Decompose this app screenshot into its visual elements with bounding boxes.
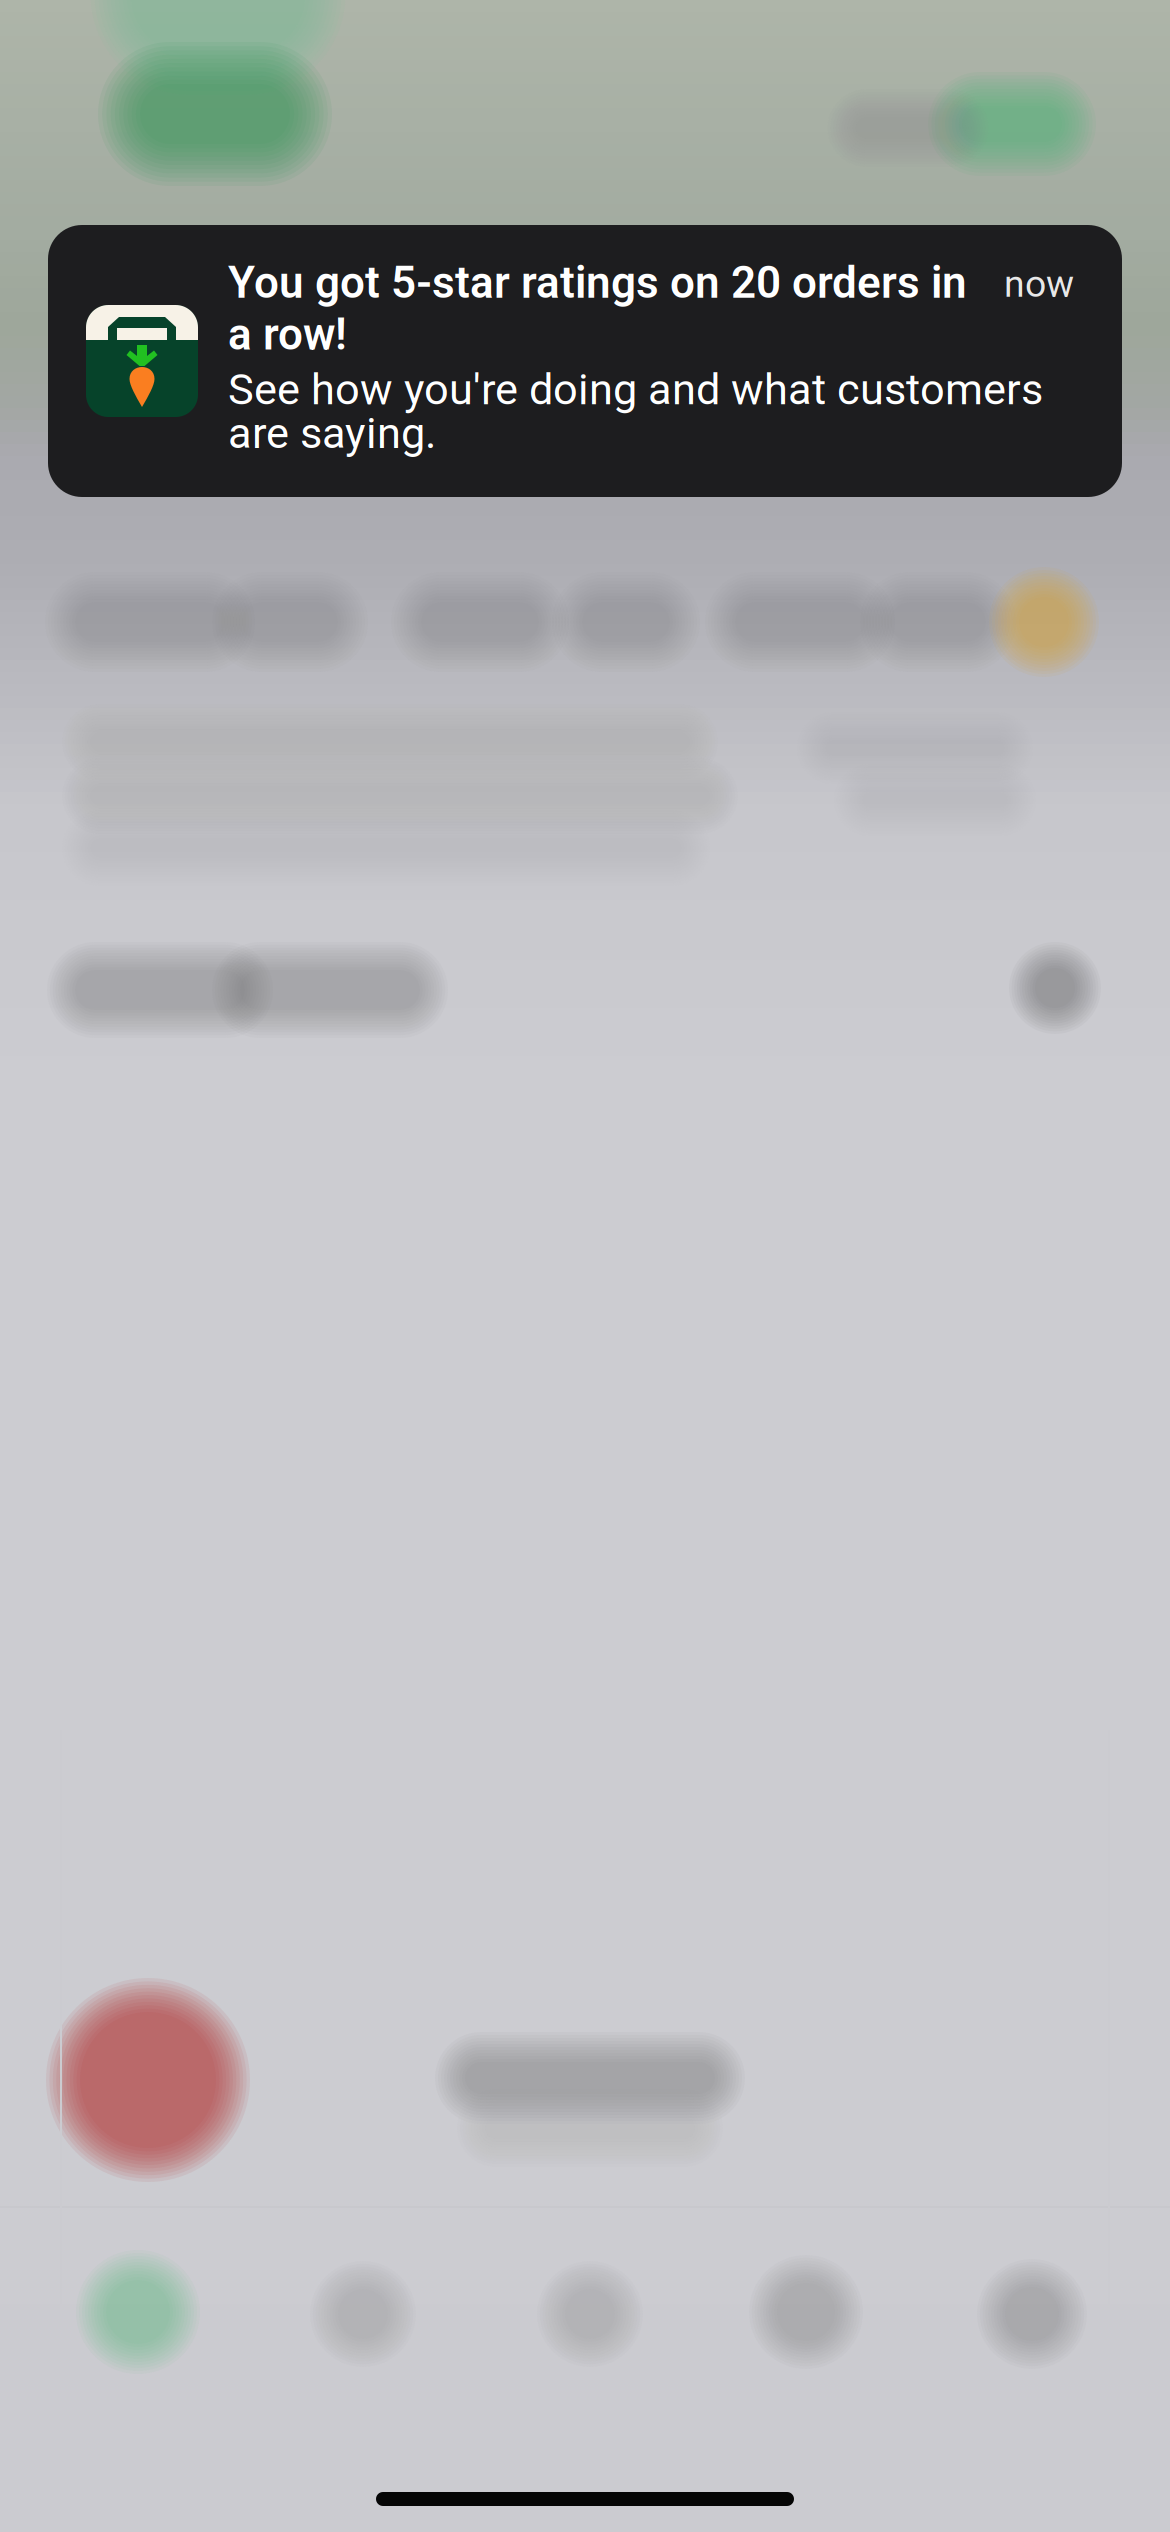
button[interactable]: You got 5-star ratings on 20 orders in a… [48,225,1122,497]
staticText: See how you're doing and what customers … [228,364,1043,459]
staticText: You got 5-star ratings on 20 orders in a… [228,257,967,360]
staticText: now [1004,262,1074,306]
